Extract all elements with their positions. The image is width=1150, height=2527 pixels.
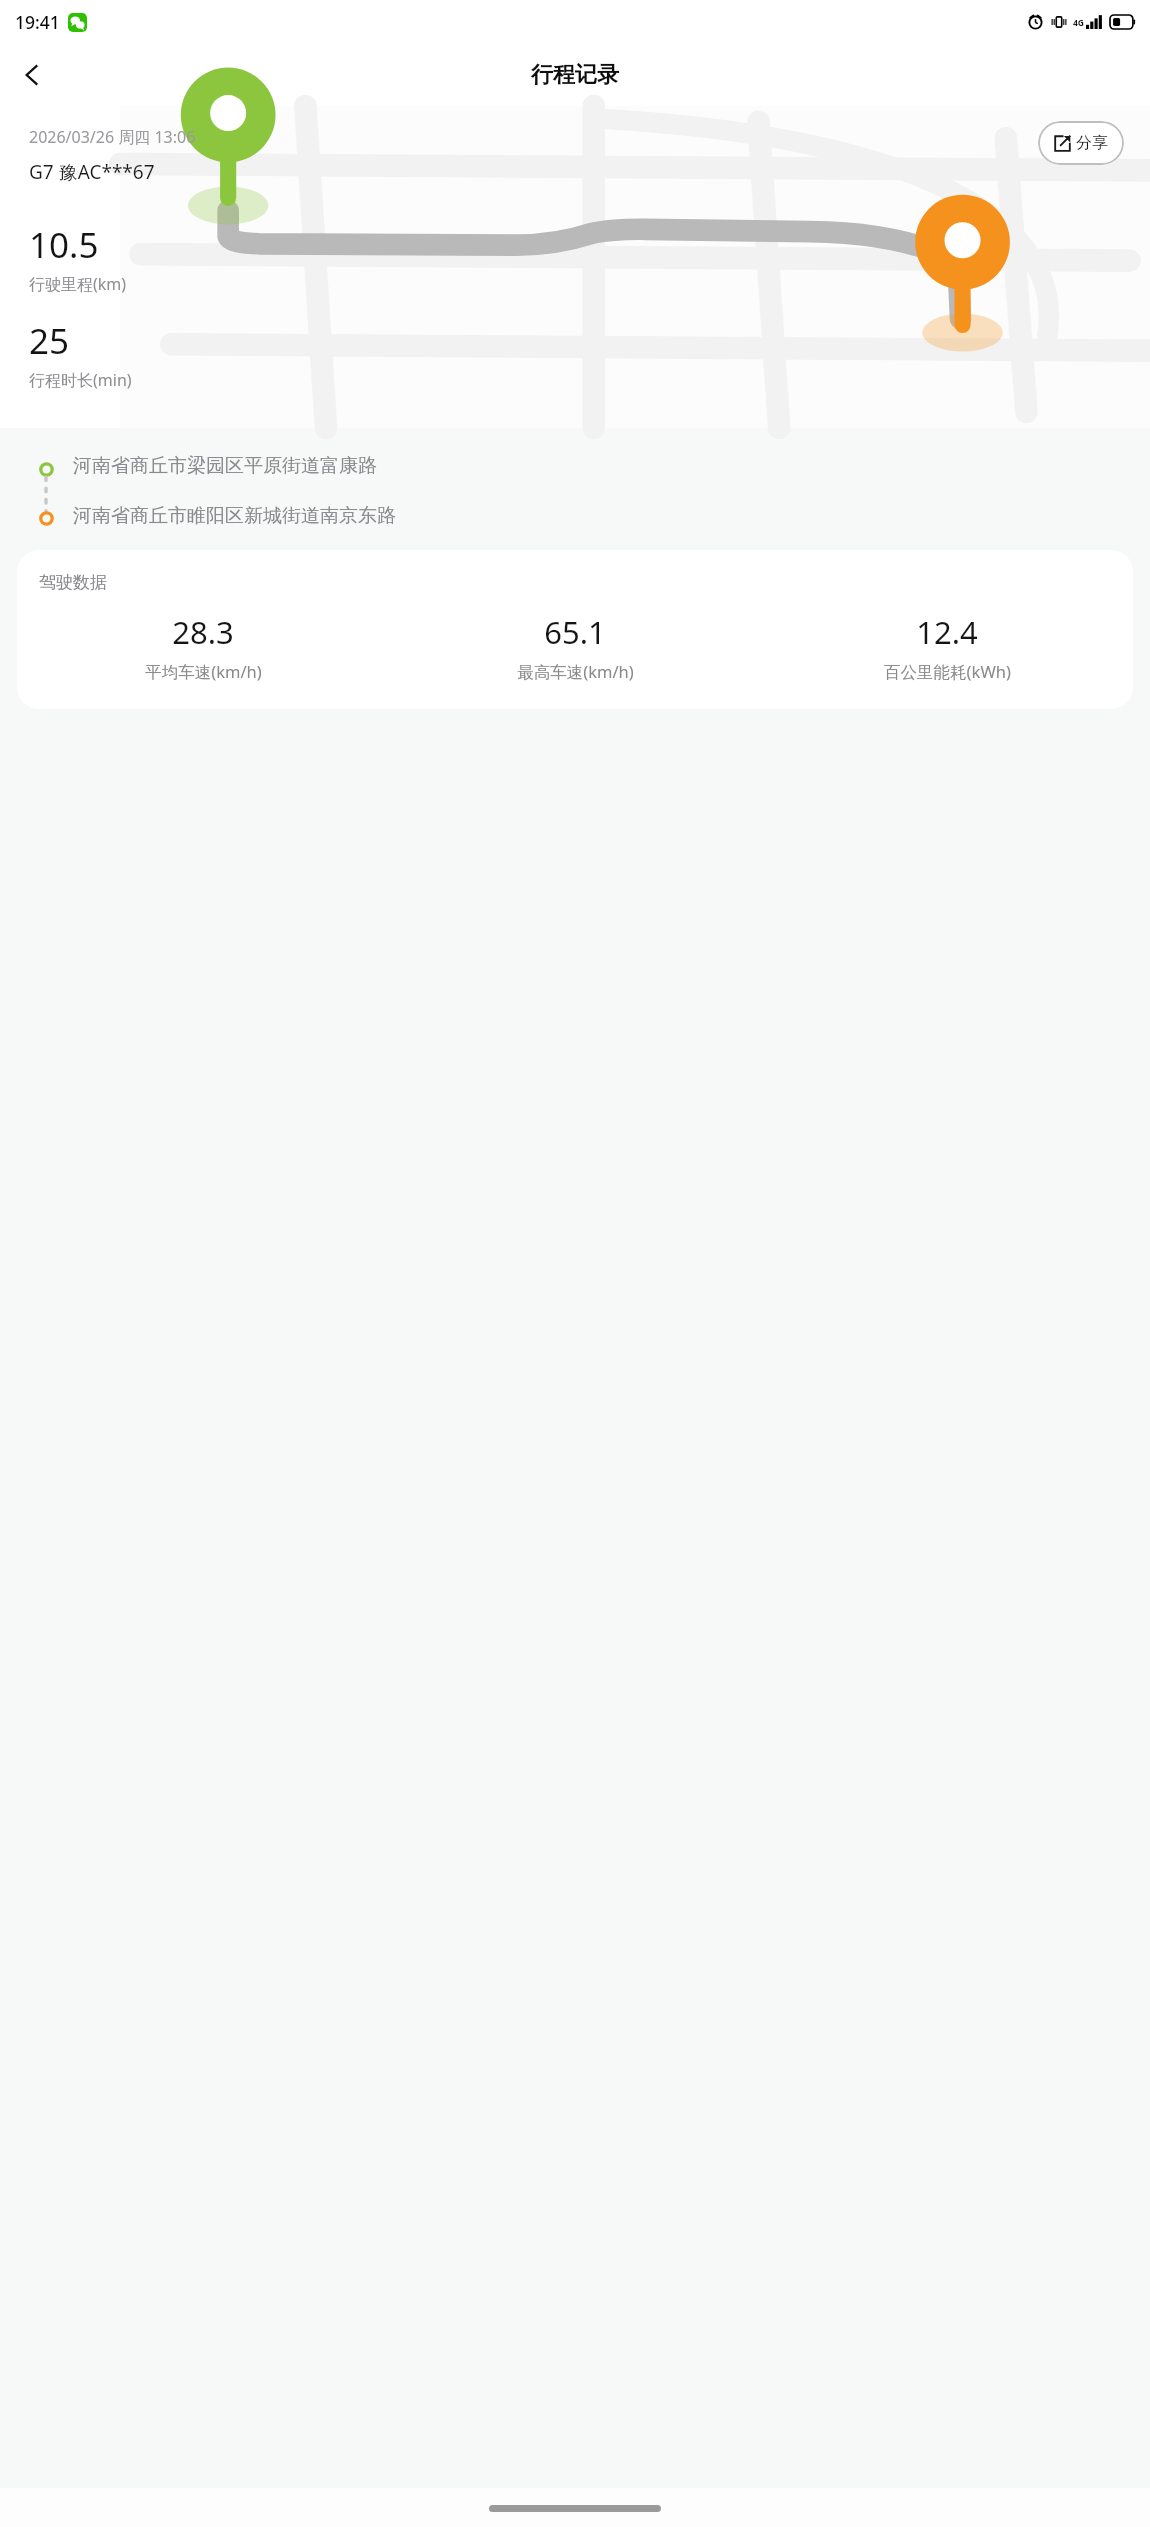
staticText: G7 豫AC***67 <box>29 159 155 185</box>
button[interactable]: 分享 <box>1038 121 1124 165</box>
staticText: 10.5 <box>29 221 99 269</box>
staticText: 2026/03/26 周四 13:06 <box>29 126 196 148</box>
staticText: 分享 <box>1076 133 1108 153</box>
staticText: 25 <box>29 317 70 365</box>
staticText: 12.4 <box>916 611 978 653</box>
staticText: 行程记录 <box>531 61 619 89</box>
staticText: 行驶里程(km) <box>29 273 127 295</box>
button[interactable]: Back <box>6 49 58 101</box>
staticText: 河南省商丘市睢阳区新城街道南京东路 <box>73 504 396 528</box>
staticText: 百公里能耗(kWh) <box>884 660 1011 683</box>
staticText: 河南省商丘市梁园区平原街道富康路 <box>73 454 377 478</box>
staticText: 平均车速(km/h) <box>145 660 262 683</box>
staticText: 驾驶数据 <box>39 572 107 593</box>
staticText: 28.3 <box>172 611 234 653</box>
staticText: 65.1 <box>544 611 606 653</box>
staticText: 最高车速(km/h) <box>517 660 634 683</box>
staticText: 19:41 <box>15 10 60 34</box>
staticText: 4G <box>1073 17 1085 29</box>
staticText: 行程时长(min) <box>29 369 132 391</box>
